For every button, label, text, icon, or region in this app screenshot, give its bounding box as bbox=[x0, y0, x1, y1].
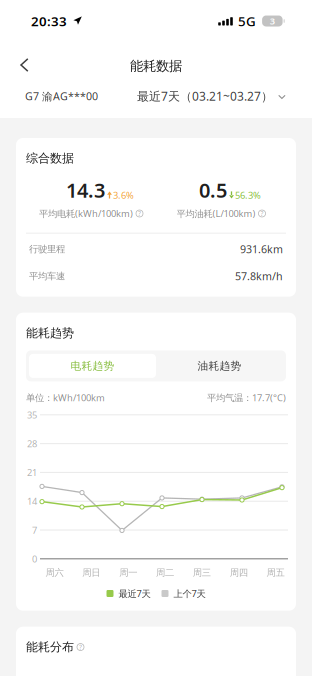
staticText: 0 bbox=[32, 553, 37, 565]
staticText: G7 渝AG***00 bbox=[25, 89, 98, 103]
staticText: 21 bbox=[27, 466, 37, 479]
staticText: 14.3 bbox=[66, 177, 105, 203]
staticText: 平均气温：17.7(°C) bbox=[207, 391, 286, 404]
button[interactable]: 电耗趋势 bbox=[29, 354, 156, 378]
staticText: 平均电耗(kWh/100km) bbox=[39, 207, 133, 220]
staticText: 电耗趋势 bbox=[70, 359, 114, 372]
staticText: 28 bbox=[27, 437, 37, 450]
staticText: 周三 bbox=[193, 567, 211, 578]
button[interactable]: 最近7天（03.21~03.27） bbox=[137, 88, 286, 104]
staticText: 周日 bbox=[82, 567, 100, 578]
staticText: 35 bbox=[27, 409, 37, 421]
button[interactable]: 油耗趋势 bbox=[156, 354, 283, 378]
staticText: 平均车速 bbox=[29, 270, 65, 282]
staticText: 平均油耗(L/100km) bbox=[176, 207, 255, 220]
staticText: 57.8km/h bbox=[235, 269, 283, 283]
staticText: 综合数据 bbox=[26, 151, 74, 166]
staticText: 7 bbox=[32, 524, 37, 536]
staticText: 周五 bbox=[267, 567, 285, 578]
staticText: 油耗趋势 bbox=[197, 359, 241, 372]
staticText: 3.6% bbox=[113, 189, 134, 201]
staticText: 5G bbox=[238, 12, 256, 30]
staticText: 0.5 bbox=[199, 177, 227, 203]
staticText: 周四 bbox=[230, 567, 248, 578]
staticText: 14 bbox=[27, 495, 37, 507]
staticText: 周一 bbox=[119, 567, 137, 578]
staticText: 56.3% bbox=[235, 189, 261, 201]
staticText: 周六 bbox=[45, 567, 63, 578]
button[interactable]: 返回 bbox=[0, 49, 47, 77]
staticText: 行驶里程 bbox=[29, 243, 65, 255]
staticText: 能耗数据 bbox=[130, 58, 182, 74]
staticText: 20:33 bbox=[31, 12, 67, 30]
staticText: 单位：kWh/100km bbox=[26, 391, 105, 404]
staticText: 931.6km bbox=[240, 242, 283, 256]
staticText: 3 bbox=[270, 15, 275, 27]
staticText: 最近7天（03.21~03.27） bbox=[137, 88, 273, 104]
staticText: 上个7天 bbox=[173, 587, 205, 600]
staticText: ? bbox=[79, 643, 82, 651]
staticText: ? bbox=[260, 209, 263, 218]
staticText: 周二 bbox=[156, 567, 174, 578]
staticText: ? bbox=[138, 209, 141, 218]
staticText: 能耗分布 bbox=[26, 640, 74, 654]
staticText: 最近7天 bbox=[118, 587, 150, 600]
staticText: 能耗趋势 bbox=[26, 326, 74, 340]
